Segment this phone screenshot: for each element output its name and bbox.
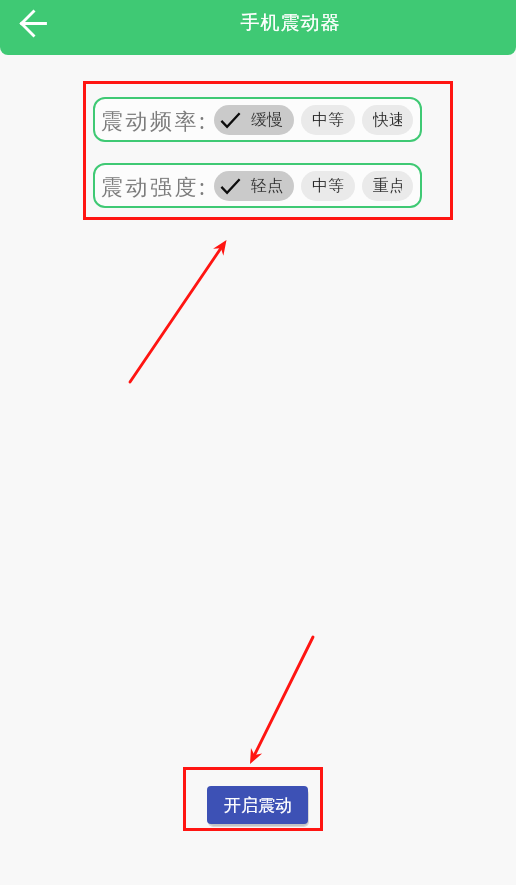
- staticText: 中等: [312, 176, 344, 196]
- button[interactable]: 轻点: [214, 171, 294, 201]
- staticText: 缓慢: [251, 110, 283, 130]
- staticText: 震动强度:: [101, 171, 208, 201]
- staticText: 中等: [312, 110, 344, 130]
- button[interactable]: 缓慢: [214, 105, 294, 135]
- button[interactable]: 重点: [362, 171, 413, 201]
- button[interactable]: 快速: [362, 105, 413, 135]
- staticText: 开启震动: [224, 795, 292, 816]
- button[interactable]: 中等: [301, 171, 355, 201]
- staticText: 手机震动器: [240, 11, 340, 35]
- staticText: 快速: [373, 110, 402, 130]
- staticText: 震动频率:: [101, 105, 208, 135]
- staticText: 重点: [373, 176, 402, 196]
- staticText: 轻点: [251, 176, 283, 196]
- button[interactable]: 开启震动: [207, 786, 308, 824]
- button[interactable]: Back: [11, 1, 56, 46]
- button[interactable]: 中等: [301, 105, 355, 135]
